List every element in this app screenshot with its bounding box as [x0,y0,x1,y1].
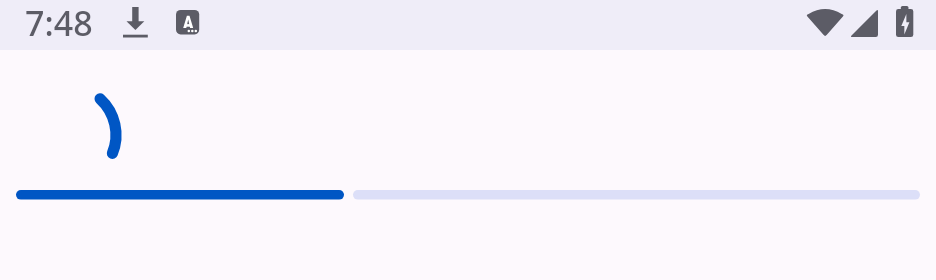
button[interactable]: Battery charging [896,6,914,38]
button[interactable]: Keyboard layout [176,10,200,35]
button[interactable]: Downloading [123,7,148,38]
button[interactable]: Mobile signal [850,9,878,37]
button[interactable]: Wi-Fi [807,8,844,36]
button[interactable]: Download progress, 36 percent [16,184,920,206]
staticText: 7:48 [25,0,93,46]
other: Loading [90,88,126,163]
